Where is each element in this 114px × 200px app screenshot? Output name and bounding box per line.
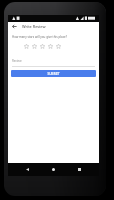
button[interactable]: Rate 4 stars <box>46 42 54 50</box>
staticText: Review <box>12 59 22 63</box>
staticText: How many stars will you give this place? <box>12 35 67 39</box>
button[interactable]: Rate 5 stars <box>54 42 62 50</box>
button[interactable]: Back <box>10 22 18 30</box>
button[interactable]: Recents <box>73 163 86 176</box>
staticText: Write Review <box>22 24 46 29</box>
button[interactable]: Rate 3 stars <box>38 42 46 50</box>
staticText: SUBMIT <box>47 72 60 76</box>
button[interactable]: Rate 2 stars <box>30 42 38 50</box>
button[interactable]: Home <box>47 163 60 176</box>
button[interactable]: SUBMIT <box>11 70 96 77</box>
button[interactable]: Back <box>21 163 34 176</box>
button[interactable]: Rate 1 stars <box>22 42 30 50</box>
